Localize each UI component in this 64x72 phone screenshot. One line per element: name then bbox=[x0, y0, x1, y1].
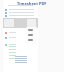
button[interactable] bbox=[5, 36, 16, 39]
button[interactable] bbox=[5, 43, 16, 46]
button[interactable]: Timesheet PDF bbox=[0, 0, 64, 5]
button[interactable] bbox=[5, 8, 64, 11]
staticText: Timesheet PDF bbox=[17, 1, 47, 6]
button[interactable] bbox=[5, 14, 64, 17]
button[interactable] bbox=[5, 11, 64, 14]
button[interactable] bbox=[5, 31, 16, 34]
